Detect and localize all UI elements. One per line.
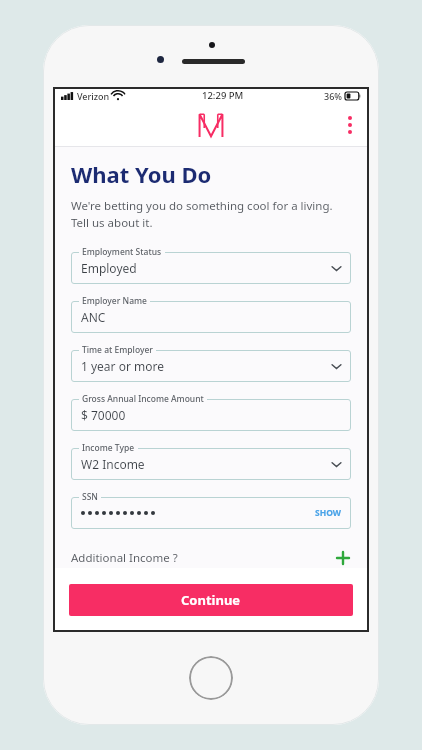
- button[interactable]: Gross Annual Income Amount: [71, 393, 351, 431]
- button[interactable]: More options: [339, 114, 361, 136]
- button[interactable]: Time at Employer: [71, 344, 351, 382]
- staticText: Employment Status: [82, 246, 162, 258]
- staticText: What You Do: [71, 159, 212, 189]
- staticText: Gross Annual Income Amount: [82, 393, 204, 405]
- button[interactable]: SSN: [71, 491, 351, 529]
- button[interactable]: Employer Name: [71, 295, 351, 333]
- staticText: W2 Income: [81, 456, 145, 472]
- button[interactable]: SHOW: [315, 507, 342, 519]
- button[interactable]: Employment Status: [71, 246, 351, 284]
- staticText: Time at Employer: [82, 344, 153, 356]
- staticText: Income Type: [82, 442, 135, 454]
- staticText: Additional Income ?: [71, 550, 178, 566]
- button[interactable]: Home: [189, 656, 233, 700]
- staticText: Continue: [181, 591, 241, 609]
- staticText: 12:29 PM: [202, 89, 244, 102]
- staticText: Employed: [81, 260, 137, 276]
- button[interactable]: Continue: [69, 584, 353, 616]
- staticText: SHOW: [315, 507, 342, 519]
- button[interactable]: Additional Income ?: [71, 547, 351, 568]
- staticText: Employer Name: [82, 295, 147, 307]
- staticText: ANC: [81, 309, 106, 325]
- staticText: 1 year or more: [81, 358, 164, 374]
- staticText: 36%: [324, 90, 342, 102]
- staticText: $ 70000: [81, 407, 126, 423]
- staticText: We're betting you do something cool for …: [71, 198, 351, 230]
- staticText: SSN: [82, 491, 98, 503]
- staticText: Verizon: [77, 90, 110, 102]
- button[interactable]: Income Type: [71, 442, 351, 480]
